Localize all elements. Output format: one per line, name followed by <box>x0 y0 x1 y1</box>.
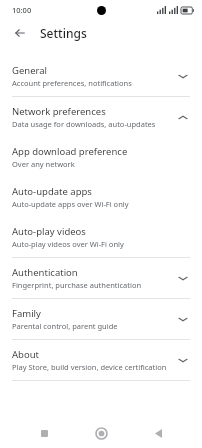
staticText: 10:00 <box>12 5 32 15</box>
staticText: Auto-play videos <box>12 225 86 238</box>
button[interactable]: Family <box>0 299 202 339</box>
staticText: Account preferences, notifications <box>12 78 132 88</box>
button[interactable]: Back <box>145 420 171 446</box>
button[interactable]: Back <box>8 21 32 45</box>
button[interactable]: App download preference <box>0 137 202 177</box>
staticText: Authentication <box>12 266 78 279</box>
button[interactable]: About <box>0 340 202 380</box>
staticText: Network preferences <box>12 105 106 118</box>
button[interactable]: Recents <box>31 420 57 446</box>
staticText: Data usage for downloads, auto-updates <box>12 119 156 129</box>
staticText: Play Store, build version, device certif… <box>12 362 167 372</box>
staticText: About <box>12 348 39 361</box>
staticText: Settings <box>40 25 87 41</box>
button[interactable]: Network preferences <box>0 97 202 137</box>
staticText: Parental control, parent guide <box>12 321 118 331</box>
staticText: Auto-update apps <box>12 185 92 198</box>
staticText: Auto-update apps over Wi-Fi only <box>12 199 129 209</box>
button[interactable]: General <box>0 56 202 96</box>
staticText: Fingerprint, purchase authentication <box>12 280 142 290</box>
button[interactable]: Authentication <box>0 258 202 298</box>
staticText: General <box>12 64 48 77</box>
button[interactable]: Home <box>88 420 114 446</box>
button[interactable]: Auto-update apps <box>0 177 202 217</box>
staticText: App download preference <box>12 145 128 158</box>
staticText: Auto-play videos over Wi-Fi only <box>12 239 124 249</box>
button[interactable]: Auto-play videos <box>0 217 202 257</box>
staticText: Over any network <box>12 159 75 169</box>
staticText: Family <box>12 307 41 320</box>
